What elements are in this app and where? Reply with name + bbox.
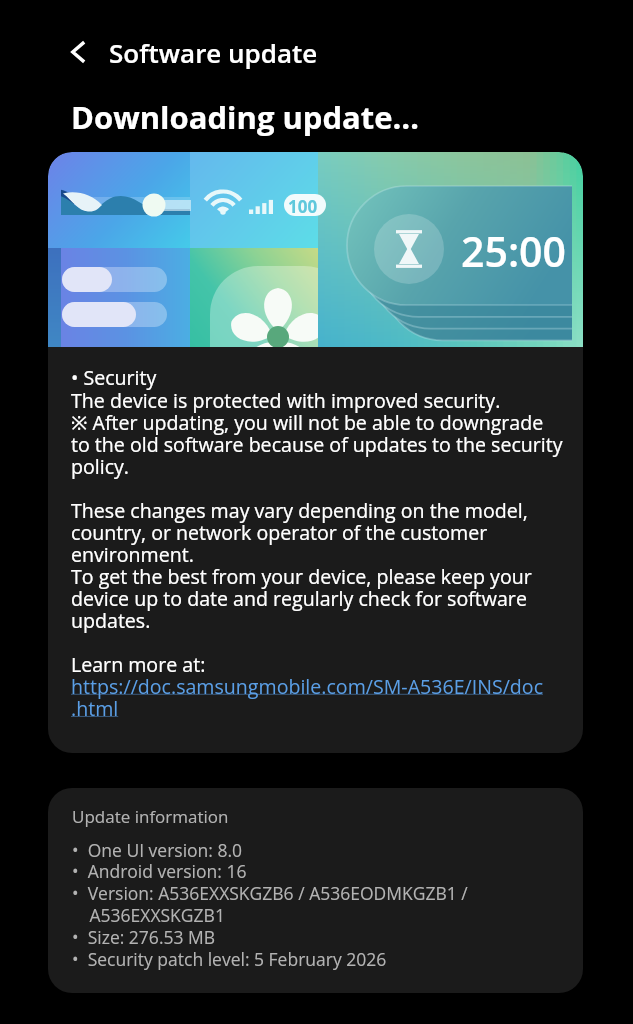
staticText: 100 xyxy=(288,195,318,218)
staticText: Update information xyxy=(72,805,229,828)
button[interactable]: Back xyxy=(64,37,94,67)
staticText: Software update xyxy=(109,35,318,70)
staticText: • One UI version: 8.0 • Android version:… xyxy=(72,838,468,971)
staticText: • Security The device is protected with … xyxy=(71,364,563,721)
staticText: Downloading update… xyxy=(71,96,420,138)
staticText: 25:00 xyxy=(461,223,567,279)
